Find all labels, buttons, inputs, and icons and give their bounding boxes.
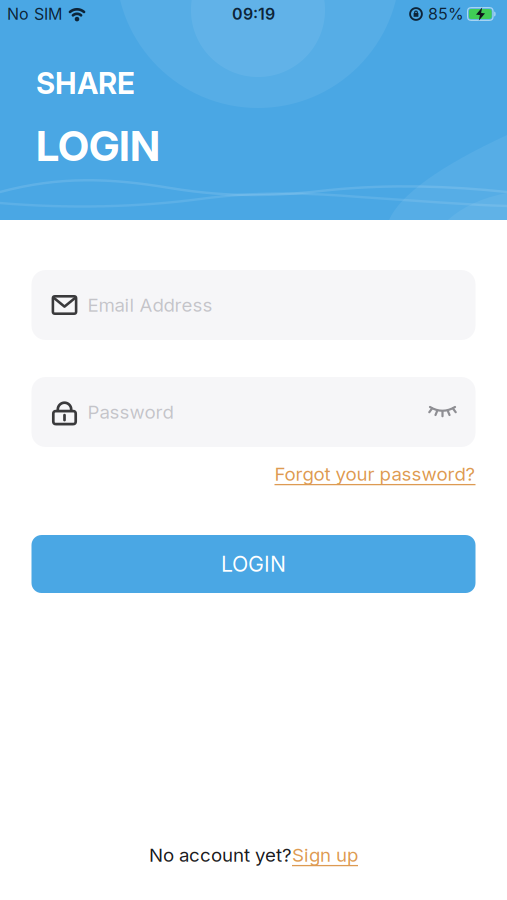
button[interactable]: LOGIN [31, 535, 475, 593]
staticText: 85% [428, 5, 464, 23]
staticText: Forgot your password? [274, 463, 475, 485]
staticText: LOGIN [221, 551, 286, 577]
button[interactable]: Sign up [292, 844, 358, 866]
button[interactable]: Password [31, 377, 475, 447]
staticText: Email Address [87, 294, 212, 316]
button[interactable]: Show password [428, 404, 456, 420]
staticText: 09:19 [232, 5, 275, 23]
staticText: LOGIN [36, 122, 160, 170]
staticText: No SIM [7, 5, 62, 23]
staticText: Password [87, 401, 173, 423]
button[interactable]: Email Address [31, 270, 475, 340]
staticText: No account yet? [149, 844, 292, 866]
staticText: Sign up [292, 844, 358, 866]
staticText: SHARE [36, 66, 135, 101]
button[interactable]: Forgot your password? [274, 463, 475, 485]
